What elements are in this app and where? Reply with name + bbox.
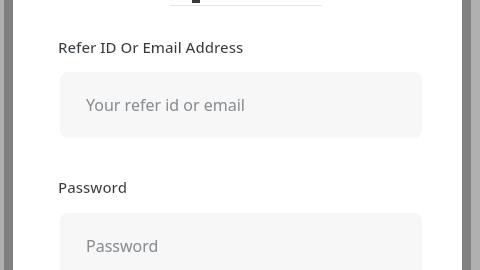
staticText: Password [58, 177, 127, 197]
staticText: Your refer id or email [86, 94, 245, 116]
button[interactable]: Password input [60, 213, 422, 270]
staticText: Password [86, 235, 159, 257]
button[interactable]: Your refer id or email [60, 72, 422, 138]
staticText: Refer ID Or Email Address [58, 37, 244, 57]
